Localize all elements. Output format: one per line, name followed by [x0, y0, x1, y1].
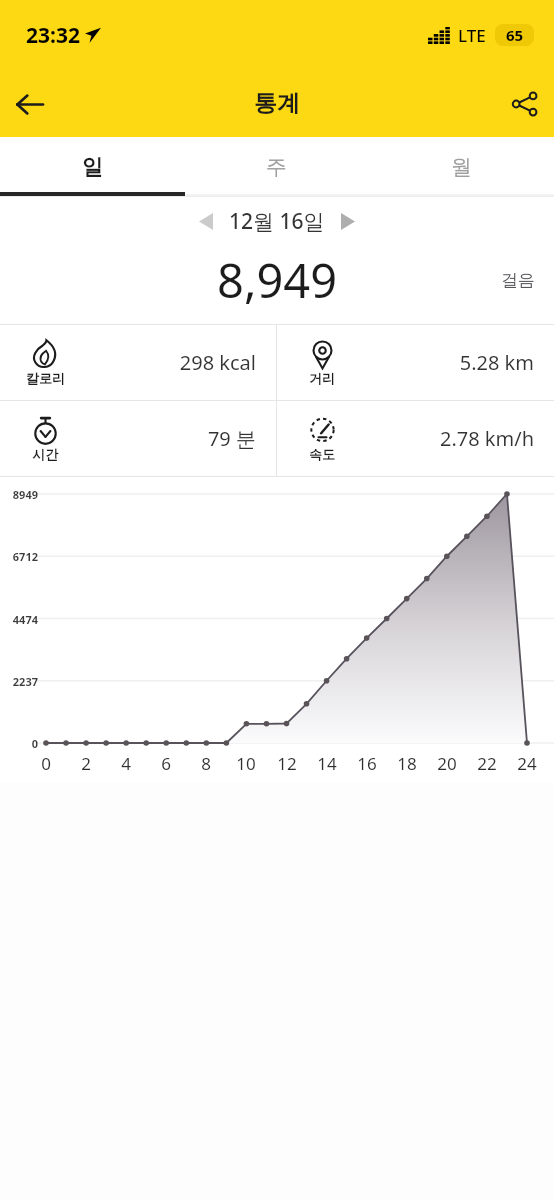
staticText: 8949: [0, 487, 38, 502]
staticText: 걸음: [501, 270, 535, 291]
staticText: 79 분: [72, 425, 256, 452]
staticText: 12: [273, 752, 301, 775]
button[interactable]: 일: [0, 137, 184, 196]
staticText: 0: [32, 752, 60, 775]
staticText: 통계: [254, 89, 300, 118]
staticText: 0: [0, 736, 38, 751]
staticText: 65: [506, 25, 524, 45]
staticText: 18: [393, 752, 421, 775]
staticText: 6712: [0, 549, 38, 564]
button[interactable]: 속도: [277, 401, 554, 476]
button[interactable]: 거리: [277, 325, 554, 400]
button[interactable]: Back: [0, 75, 58, 133]
staticText: 14: [313, 752, 341, 775]
staticText: 시간: [32, 446, 58, 462]
staticText: 24: [513, 752, 541, 775]
button[interactable]: 칼로리: [0, 325, 276, 400]
staticText: 칼로리: [26, 370, 65, 386]
button[interactable]: 월: [369, 137, 554, 196]
staticText: 5.28 km: [349, 349, 534, 376]
staticText: 20: [433, 752, 461, 775]
staticText: 8,949: [217, 248, 338, 312]
staticText: 298 kcal: [72, 349, 256, 376]
staticText: 일: [82, 154, 103, 180]
button[interactable]: 시간: [0, 401, 276, 476]
button[interactable]: Next day: [325, 198, 371, 244]
button[interactable]: 주: [184, 137, 369, 196]
staticText: 월: [451, 154, 472, 180]
staticText: 8: [192, 752, 220, 775]
staticText: 10: [232, 752, 260, 775]
staticText: 4: [112, 752, 140, 775]
staticText: 2237: [0, 674, 38, 689]
staticText: 6: [152, 752, 180, 775]
staticText: 4474: [0, 612, 38, 627]
staticText: 속도: [309, 446, 335, 462]
staticText: 2: [72, 752, 100, 775]
staticText: 22: [473, 752, 501, 775]
staticText: 23:32: [26, 21, 80, 50]
staticText: 2.78 km/h: [349, 425, 534, 452]
button[interactable]: Share: [496, 75, 554, 133]
staticText: 주: [266, 154, 287, 180]
staticText: 거리: [309, 370, 335, 386]
staticText: 12월 16일: [229, 207, 325, 236]
staticText: 16: [353, 752, 381, 775]
button[interactable]: Previous day: [183, 198, 229, 244]
staticText: LTE: [458, 24, 486, 47]
